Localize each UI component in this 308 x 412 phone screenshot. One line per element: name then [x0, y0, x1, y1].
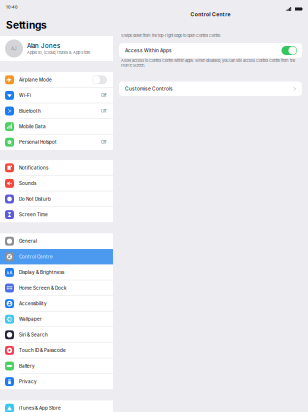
staticText: Settings: [6, 19, 47, 31]
button[interactable]: Wallpaper: [0, 311, 113, 327]
staticText: Touch ID & Passcode: [19, 348, 66, 353]
staticText: Siri & Search: [19, 332, 48, 338]
button[interactable]: Bluetooth: [0, 103, 113, 119]
staticText: Swipe down from the top-right edge to op…: [121, 33, 221, 38]
staticText: Screen Time: [19, 212, 48, 217]
button[interactable]: Home Screen & Dock: [0, 280, 113, 296]
button[interactable]: Control Centre: [0, 249, 113, 265]
staticText: Off: [101, 140, 107, 145]
staticText: Personal Hotspot: [19, 139, 57, 145]
staticText: Battery: [19, 363, 35, 369]
staticText: Access Within Apps: [125, 48, 172, 53]
staticText: General: [19, 238, 37, 244]
staticText: Bluetooth: [19, 108, 41, 114]
staticText: Mobile Data: [19, 124, 46, 129]
button[interactable]: General: [0, 233, 113, 249]
button[interactable]: Screen Time: [0, 207, 113, 222]
button[interactable]: Do Not Disturb: [0, 191, 113, 207]
button[interactable]: Siri & Search: [0, 327, 113, 343]
button[interactable]: Display & Brightness: [0, 265, 113, 280]
staticText: Airplane Mode: [19, 77, 52, 83]
button[interactable]: Accessibility: [0, 296, 113, 311]
button[interactable]: Sounds: [0, 176, 113, 191]
staticText: AJ: [11, 46, 17, 51]
staticText: iTunes & App Store: [19, 405, 61, 411]
staticText: Privacy: [19, 379, 37, 384]
button[interactable]: Mobile Data: [0, 119, 113, 134]
staticText: Control Centre: [19, 254, 53, 260]
staticText: Off: [101, 108, 107, 114]
button[interactable]: Wi-Fi: [0, 88, 113, 103]
staticText: Sounds: [19, 181, 36, 186]
staticText: Apple ID, iCloud, iTunes & App Store: [27, 50, 90, 55]
button[interactable]: Personal Hotspot: [0, 134, 113, 150]
button[interactable]: Battery: [0, 358, 113, 374]
staticText: Allow access to Control Centre within ap…: [121, 58, 295, 68]
button[interactable]: Notifications: [0, 160, 113, 176]
staticText: Accessibility: [19, 301, 47, 306]
staticText: Wallpaper: [19, 316, 42, 322]
staticText: Off: [101, 93, 107, 98]
staticText: Control Centre: [191, 11, 230, 17]
button[interactable]: iTunes & App Store: [0, 400, 113, 412]
button[interactable]: Access Within Apps: [119, 43, 302, 58]
button[interactable]: Airplane Mode: [0, 72, 113, 88]
staticText: Display & Brightness: [19, 270, 64, 275]
staticText: Alan Jones: [27, 42, 60, 49]
button[interactable]: Touch ID & Passcode: [0, 343, 113, 358]
staticText: Home Screen & Dock: [19, 285, 67, 291]
button[interactable]: Privacy: [0, 374, 113, 389]
button[interactable]: AJ: [0, 36, 113, 61]
staticText: Customise Controls: [125, 86, 173, 92]
staticText: Do Not Disturb: [19, 196, 51, 202]
staticText: Notifications: [19, 165, 48, 171]
button[interactable]: Customise Controls: [119, 81, 302, 96]
staticText: Wi-Fi: [19, 93, 31, 98]
staticText: 10:40: [6, 5, 18, 9]
